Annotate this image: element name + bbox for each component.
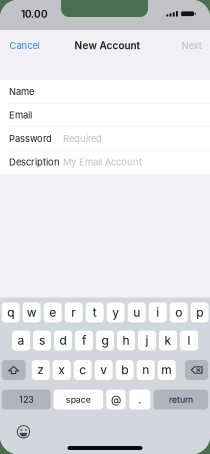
staticText: a xyxy=(17,333,24,348)
button[interactable]: Password xyxy=(0,127,210,150)
button[interactable]: i xyxy=(149,302,167,322)
staticText: p xyxy=(196,305,203,320)
button[interactable]: Delete xyxy=(185,360,208,380)
button[interactable]: j xyxy=(138,330,156,350)
staticText: s xyxy=(39,333,45,348)
button[interactable]: Email xyxy=(0,103,210,127)
button[interactable]: e xyxy=(44,302,62,322)
button[interactable]: o xyxy=(170,302,188,322)
button[interactable]: n xyxy=(137,360,155,380)
staticText: u xyxy=(133,305,140,320)
staticText: New Account xyxy=(74,39,140,52)
staticText: My Email Account xyxy=(63,157,142,168)
staticText: n xyxy=(142,363,149,377)
staticText: d xyxy=(59,333,66,348)
staticText: . xyxy=(138,393,141,406)
staticText: Description xyxy=(9,157,60,168)
staticText: Next xyxy=(182,40,202,51)
button[interactable]: v xyxy=(95,360,113,380)
button[interactable]: @ xyxy=(106,389,126,409)
staticText: k xyxy=(164,333,171,348)
staticText: e xyxy=(49,305,56,320)
staticText: w xyxy=(27,305,37,320)
button[interactable]: Shift xyxy=(2,360,26,380)
button[interactable]: z xyxy=(32,360,50,380)
button[interactable]: b xyxy=(116,360,134,380)
staticText: y xyxy=(112,305,119,320)
button[interactable]: y xyxy=(107,302,125,322)
button[interactable]: a xyxy=(12,330,30,350)
staticText: t xyxy=(93,305,97,320)
staticText: h xyxy=(122,333,129,348)
staticText: g xyxy=(101,333,108,348)
button[interactable]: x xyxy=(53,360,71,380)
staticText: Cancel xyxy=(9,40,39,51)
staticText: @ xyxy=(111,393,121,406)
button[interactable]: f xyxy=(75,330,93,350)
button[interactable]: t xyxy=(86,302,104,322)
button[interactable]: w xyxy=(23,302,41,322)
staticText: i xyxy=(156,305,159,320)
button[interactable]: space xyxy=(54,389,103,409)
staticText: v xyxy=(100,363,107,377)
staticText: z xyxy=(37,363,44,377)
button[interactable]: Description xyxy=(0,150,210,174)
button[interactable]: g xyxy=(96,330,114,350)
staticText: f xyxy=(82,333,86,348)
staticText: space xyxy=(66,394,91,405)
staticText: c xyxy=(79,363,86,377)
button[interactable]: m xyxy=(158,360,176,380)
button[interactable]: k xyxy=(159,330,177,350)
staticText: return xyxy=(169,394,193,405)
staticText: b xyxy=(121,363,128,377)
button[interactable]: q xyxy=(2,302,20,322)
button[interactable]: c xyxy=(74,360,92,380)
staticText: r xyxy=(71,305,76,320)
button[interactable]: u xyxy=(128,302,146,322)
staticText: j xyxy=(145,333,148,348)
button[interactable]: l xyxy=(180,330,198,350)
staticText: m xyxy=(161,363,172,377)
button[interactable]: Name xyxy=(0,80,210,103)
staticText: 123 xyxy=(19,394,33,405)
staticText: x xyxy=(58,363,65,377)
staticText: Name xyxy=(9,86,34,97)
button[interactable]: h xyxy=(117,330,135,350)
staticText: Required xyxy=(63,133,102,144)
button[interactable]: s xyxy=(33,330,51,350)
button[interactable]: 123 xyxy=(2,389,51,409)
staticText: o xyxy=(175,305,182,320)
button[interactable]: . xyxy=(129,389,150,409)
staticText: l xyxy=(187,333,190,348)
button[interactable]: r xyxy=(65,302,83,322)
button[interactable]: Emoji keyboard xyxy=(17,425,30,438)
button[interactable]: p xyxy=(191,302,209,322)
button[interactable]: return xyxy=(154,389,208,409)
staticText: Password xyxy=(9,133,52,144)
staticText: q xyxy=(7,305,14,320)
button[interactable]: Cancel xyxy=(9,39,49,52)
staticText: 10.00 xyxy=(21,8,48,20)
button[interactable]: Next xyxy=(162,39,202,52)
button[interactable]: d xyxy=(54,330,72,350)
staticText: Email xyxy=(9,110,32,121)
